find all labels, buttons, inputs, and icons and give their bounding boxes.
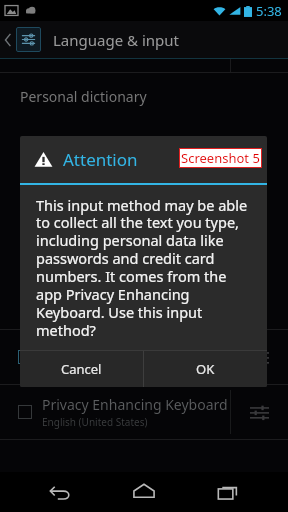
staticText: English (United States): [42, 415, 148, 429]
staticText: This input method may be able to collect…: [36, 195, 255, 340]
staticText: Cancel: [61, 360, 102, 378]
button[interactable]: Back: [0, 21, 288, 58]
staticText: OK: [196, 360, 215, 378]
staticText: Google voice typing: [42, 340, 173, 359]
button[interactable]: Home: [120, 472, 168, 512]
button[interactable]: OK: [144, 351, 267, 387]
button[interactable]: Privacy Enhancing Keyboard: [0, 385, 288, 439]
button[interactable]: Back: [36, 472, 84, 512]
staticText: Automatic: [42, 360, 91, 374]
staticText: 5:38: [256, 2, 282, 20]
button[interactable]: Cancel: [20, 351, 143, 387]
staticText: Language & input: [53, 30, 179, 50]
button[interactable]: Personal dictionary: [0, 73, 288, 119]
other: Back: [4, 32, 12, 48]
button[interactable]: Google voice typing: [0, 330, 288, 384]
button[interactable]: Recent apps: [204, 472, 252, 512]
button[interactable]: Settings for Google voice typing: [231, 330, 288, 384]
staticText: Attention: [63, 148, 138, 171]
staticText: Personal dictionary: [20, 87, 147, 106]
button[interactable]: Settings for Privacy Enhancing Keyboard: [231, 385, 288, 439]
staticText: Privacy Enhancing Keyboard: [42, 395, 228, 414]
staticText: Screenshot 5: [181, 149, 260, 167]
other: Language and input: [16, 27, 41, 52]
